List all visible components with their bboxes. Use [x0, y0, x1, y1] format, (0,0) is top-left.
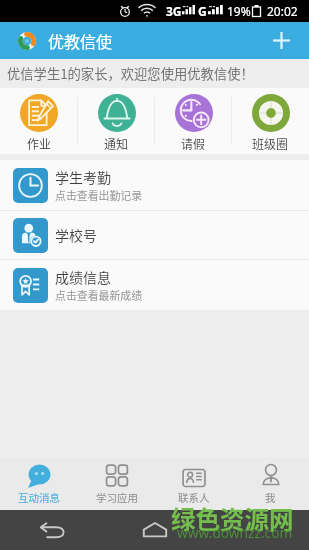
button[interactable]: 学生考勤	[0, 160, 309, 210]
staticText: 成绩信息	[55, 267, 111, 287]
button[interactable]: 通知	[78, 88, 155, 154]
staticText: 通知	[104, 135, 129, 152]
button[interactable]: 班级圈	[232, 88, 309, 154]
staticText: 优信学生1的家长，欢迎您使用优教信使！	[7, 64, 254, 83]
staticText: G	[198, 3, 207, 19]
staticText: 联系人	[178, 490, 210, 505]
staticText: 绿色资源网	[171, 501, 294, 536]
staticText: 点击查看最新成绩	[55, 287, 143, 303]
staticText: 优教信使	[48, 29, 113, 52]
staticText: 19%	[227, 3, 251, 19]
staticText: 点击查看出勤记录	[55, 187, 143, 203]
staticText: 学习应用	[96, 490, 138, 505]
button[interactable]: 作业	[0, 88, 78, 154]
button[interactable]: 请假	[155, 88, 232, 154]
button[interactable]: 成绩信息	[0, 260, 309, 310]
staticText: 学校号	[55, 225, 97, 245]
button[interactable]: 学校号	[0, 211, 309, 259]
button[interactable]: Home	[103, 510, 206, 550]
staticText: 作业	[27, 135, 52, 152]
staticText: 班级圈	[252, 135, 289, 152]
button[interactable]: 联系人	[155, 458, 232, 510]
staticText: 3G	[166, 3, 182, 19]
staticText: 20:02	[267, 3, 298, 19]
staticText: 互动消息	[18, 490, 60, 505]
staticText: 我	[265, 490, 276, 505]
button[interactable]: Back	[0, 510, 103, 550]
staticText: 请假	[181, 135, 206, 152]
button[interactable]: 学习应用	[78, 458, 155, 510]
button[interactable]: 互动消息	[0, 458, 78, 510]
button[interactable]: Add	[259, 22, 303, 59]
staticText: 学生考勤	[55, 167, 111, 187]
button[interactable]: Recents	[206, 510, 309, 550]
button[interactable]: 我	[232, 458, 309, 510]
staticText: www.downzz.com	[177, 523, 293, 542]
